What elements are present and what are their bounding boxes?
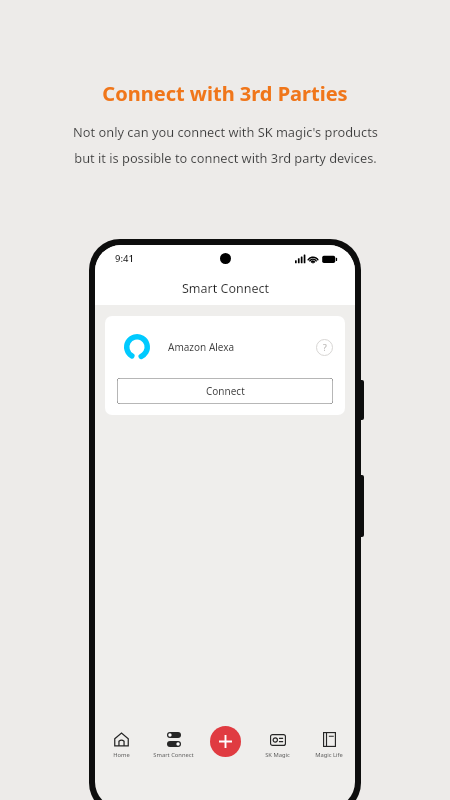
staticText: Amazon Alexa xyxy=(168,340,235,354)
staticText: Not only can you connect with SK magic's… xyxy=(73,123,378,140)
button[interactable]: Help xyxy=(316,339,333,356)
other: Amazon Alexa xyxy=(117,327,157,367)
staticText: but it is possible to connect with 3rd p… xyxy=(74,149,377,166)
staticText: Home xyxy=(113,751,130,759)
staticText: ? xyxy=(323,342,327,354)
button[interactable]: Home xyxy=(95,726,147,759)
button[interactable]: SK Magic xyxy=(251,726,303,759)
staticText: Magic Life xyxy=(315,751,343,759)
button[interactable]: Add device xyxy=(210,726,241,757)
button[interactable]: Magic Life xyxy=(303,726,355,759)
staticText: Smart Connect xyxy=(153,751,194,759)
staticText: 9:41 xyxy=(115,252,134,265)
button[interactable]: Smart Connect xyxy=(147,726,199,759)
staticText: Smart Connect xyxy=(182,280,269,297)
staticText: SK Magic xyxy=(265,751,290,759)
staticText: Connect with 3rd Parties xyxy=(102,80,348,107)
button[interactable]: Connect xyxy=(117,378,333,404)
staticText: Connect xyxy=(206,384,245,398)
